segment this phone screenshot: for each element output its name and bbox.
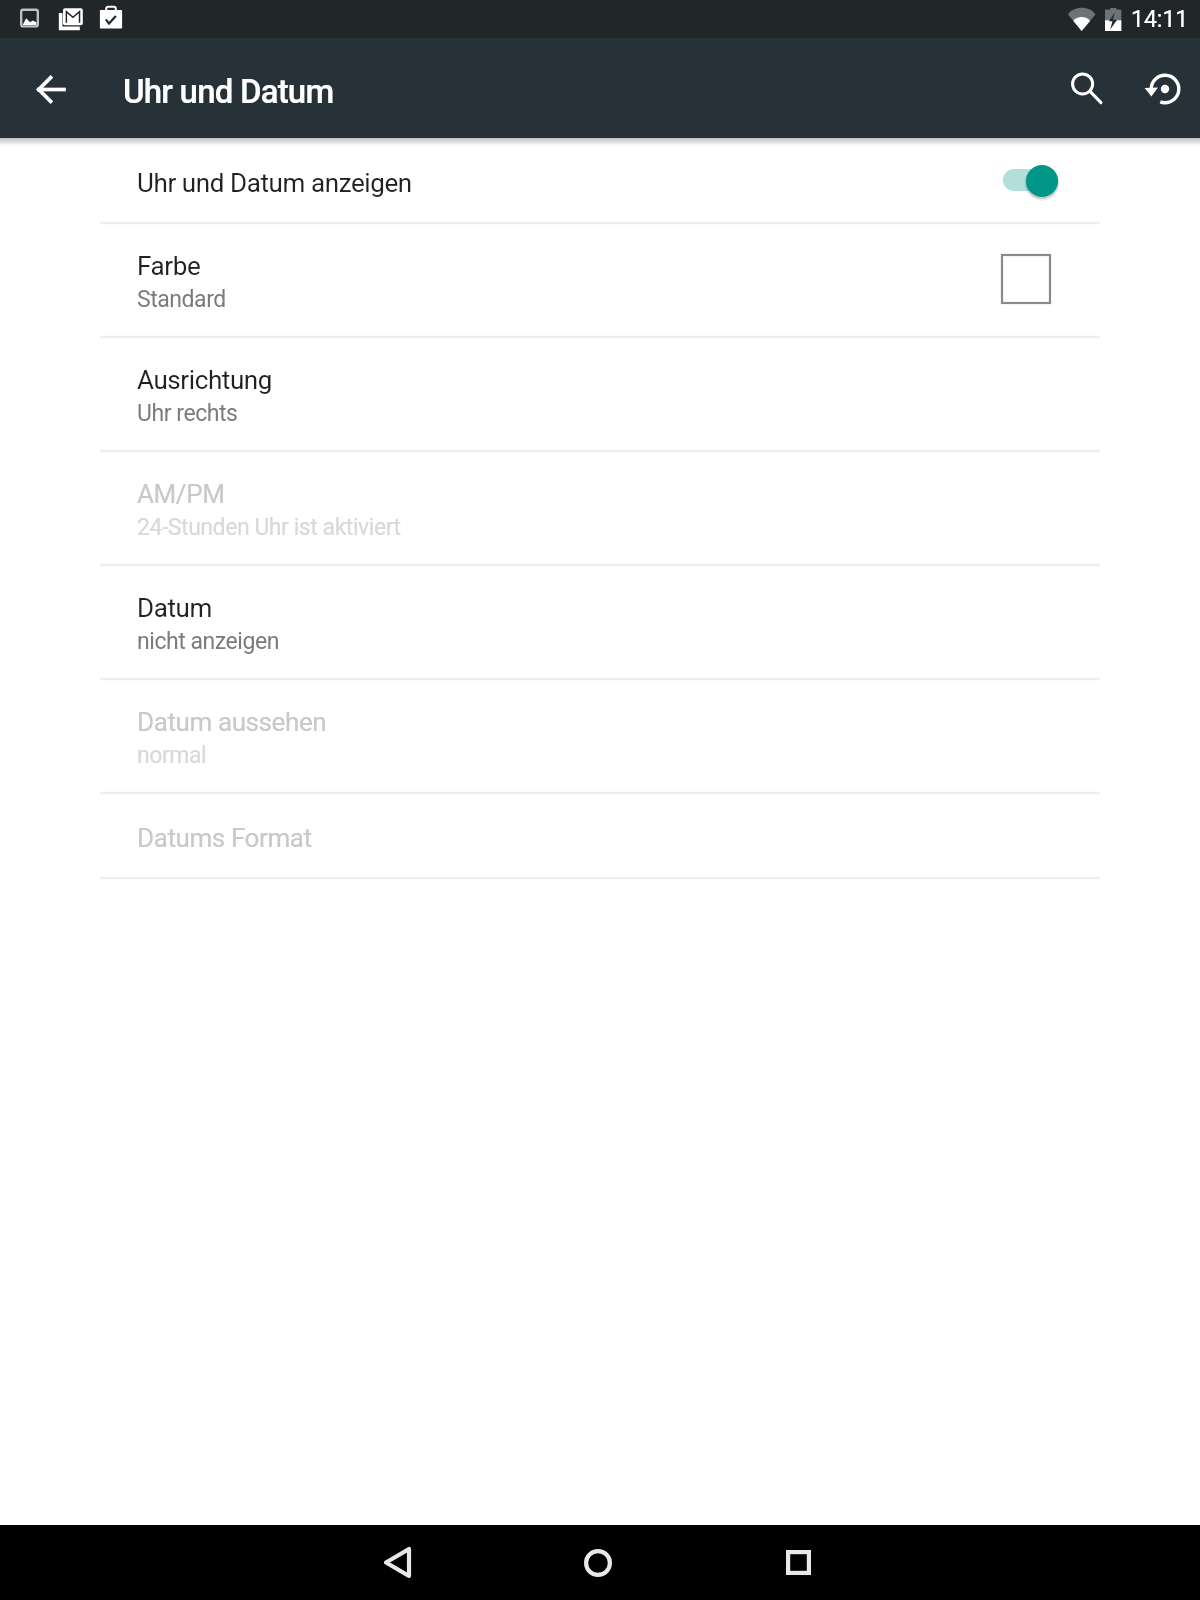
button[interactable]: Uhr und Datum anzeigen bbox=[0, 138, 1200, 223]
staticText: Uhr und Datum anzeigen bbox=[137, 168, 412, 198]
button[interactable]: Datum bbox=[0, 565, 1200, 679]
button[interactable]: AM/PM bbox=[0, 451, 1200, 565]
button[interactable]: Ausrichtung bbox=[0, 337, 1200, 451]
staticText: Uhr und Datum bbox=[123, 72, 334, 111]
staticText: normal bbox=[137, 742, 207, 769]
button[interactable]: Navigate up bbox=[16, 55, 84, 123]
staticText: AM/PM bbox=[137, 479, 225, 509]
button[interactable]: Back bbox=[347, 1525, 447, 1600]
button[interactable]: Farbe bbox=[0, 223, 1200, 337]
staticText: Datum aussehen bbox=[137, 707, 327, 737]
button[interactable]: Datums Format bbox=[0, 793, 1200, 878]
button[interactable]: Search bbox=[1052, 54, 1120, 122]
button[interactable]: Recent apps bbox=[748, 1525, 848, 1600]
staticText: Standard bbox=[137, 286, 226, 313]
staticText: 24-Stunden Uhr ist aktiviert bbox=[137, 514, 401, 541]
button[interactable]: Datum aussehen bbox=[0, 679, 1200, 793]
staticText: 14:11 bbox=[1131, 6, 1189, 33]
staticText: Datum bbox=[137, 593, 212, 623]
staticText: Farbe bbox=[137, 251, 201, 281]
button[interactable]: Restore defaults bbox=[1131, 55, 1199, 123]
button[interactable]: Home bbox=[548, 1525, 648, 1600]
staticText: Uhr rechts bbox=[137, 400, 238, 427]
staticText: nicht anzeigen bbox=[137, 628, 279, 655]
staticText: Ausrichtung bbox=[137, 365, 273, 395]
staticText: Datums Format bbox=[137, 823, 312, 853]
